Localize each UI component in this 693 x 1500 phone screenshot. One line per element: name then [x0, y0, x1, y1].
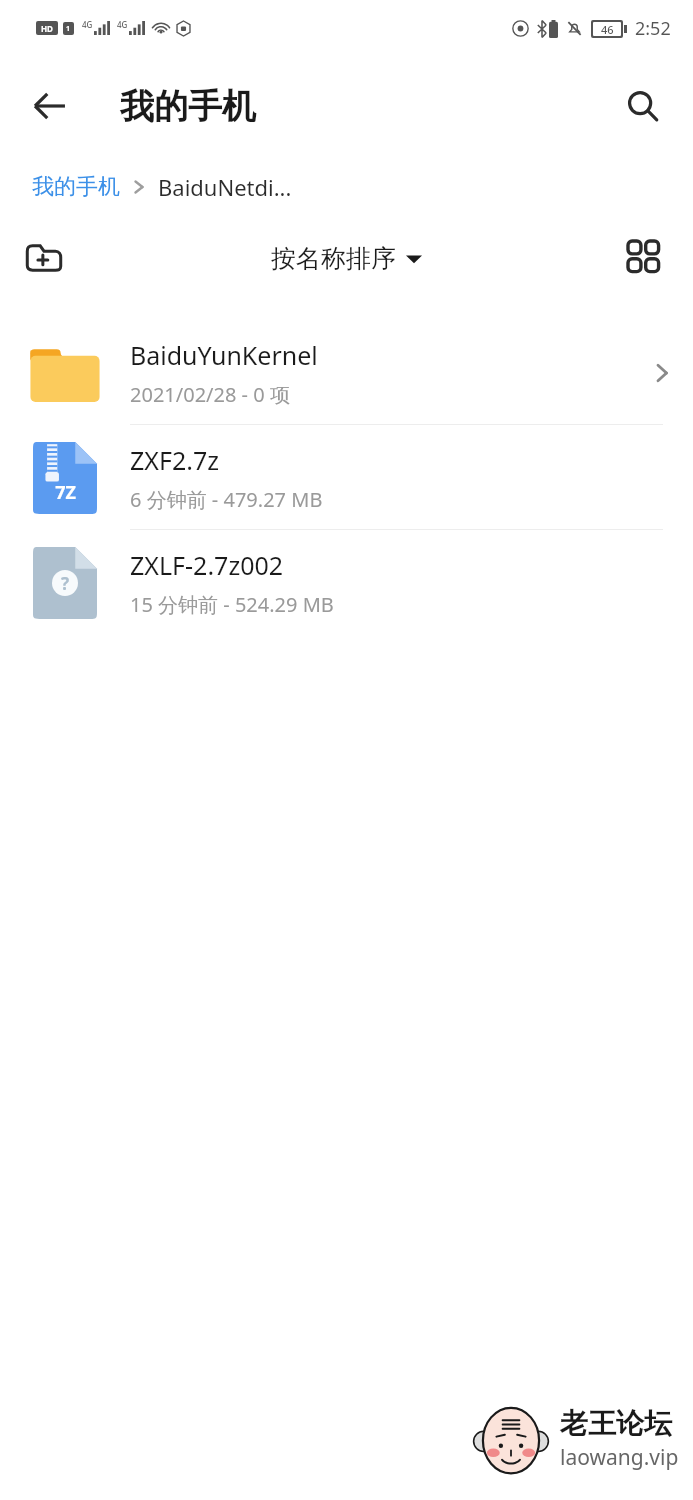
staticText: 15 分钟前 - 524.29 MB [130, 591, 334, 618]
staticText: 46 [601, 22, 614, 36]
button[interactable]: Grid view [617, 230, 673, 286]
staticText: ZXF2.7z [130, 443, 219, 477]
staticText: 7Z [55, 480, 76, 505]
staticText: 2:52 [635, 16, 671, 41]
button[interactable]: 我的手机 [32, 173, 120, 201]
staticText: 我的手机 [32, 173, 120, 201]
button[interactable]: 7Z [0, 425, 693, 530]
staticText: BaiduYunKernel [130, 338, 318, 372]
button[interactable]: BaiduYunKernel [0, 320, 693, 425]
staticText: 4G [82, 19, 93, 30]
staticText: 4G [117, 19, 128, 30]
button[interactable]: 按名称排序 [263, 237, 430, 280]
button[interactable]: Search [615, 78, 671, 134]
staticText: 我的手机 [120, 85, 256, 128]
button[interactable]: Back [22, 78, 78, 134]
staticText: 1 [66, 24, 71, 34]
staticText: ZXLF-2.7z002 [130, 548, 284, 582]
staticText: laowang.vip [560, 1443, 679, 1472]
staticText: 2021/02/28 - 0 项 [130, 381, 290, 408]
button[interactable]: ? [0, 530, 693, 635]
staticText: ? [61, 572, 70, 595]
button[interactable]: New folder [16, 230, 72, 286]
staticText: 按名称排序 [271, 243, 396, 274]
button[interactable]: BaiduNetdi... [158, 172, 292, 202]
staticText: 6 分钟前 - 479.27 MB [130, 486, 323, 513]
staticText: BaiduNetdi... [158, 172, 292, 202]
staticText: 老王论坛 [560, 1406, 672, 1441]
staticText: HD [41, 23, 53, 34]
